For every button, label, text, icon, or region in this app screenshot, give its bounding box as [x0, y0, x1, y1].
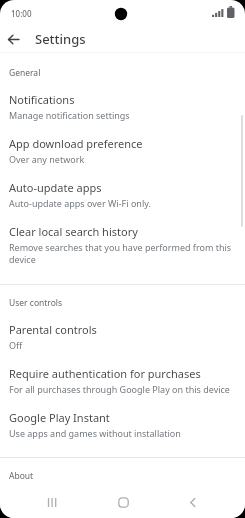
staticText: Manage notification settings	[9, 109, 130, 121]
staticText: Auto-update apps	[9, 180, 102, 195]
staticText: Google Play Instant	[9, 410, 110, 425]
staticText: Auto-update apps over Wi-Fi only.	[9, 197, 151, 209]
staticText: Notifications	[9, 92, 75, 107]
button[interactable]: Recent apps	[34, 486, 70, 518]
button[interactable]: Google Play Instant	[0, 403, 245, 447]
staticText: Settings	[35, 30, 86, 48]
button[interactable]: Back	[175, 486, 211, 518]
staticText: Remove searches that you have performed …	[9, 241, 237, 265]
button[interactable]: Back	[0, 26, 26, 52]
button[interactable]: Require authentication for purchases	[0, 359, 245, 403]
staticText: For all purchases through Google Play on…	[9, 383, 230, 395]
staticText: About	[9, 470, 34, 482]
staticText: Parental controls	[9, 322, 97, 337]
staticText: Use apps and games without installation	[9, 427, 181, 439]
staticText: Off	[9, 339, 23, 351]
button[interactable]: Home	[105, 486, 141, 518]
button[interactable]: Parental controls	[0, 315, 245, 359]
staticText: App download preference	[9, 136, 143, 151]
button[interactable]: App download preference	[0, 129, 245, 173]
staticText: Require authentication for purchases	[9, 366, 201, 381]
staticText: Over any network	[9, 153, 85, 165]
button[interactable]: Auto-update apps	[0, 173, 245, 217]
staticText: General	[9, 67, 41, 79]
staticText: Clear local search history	[9, 224, 138, 239]
button[interactable]: Clear local search history	[0, 217, 245, 273]
staticText: User controls	[9, 297, 63, 309]
staticText: 10:00	[11, 8, 32, 19]
button[interactable]: Notifications	[0, 85, 245, 129]
